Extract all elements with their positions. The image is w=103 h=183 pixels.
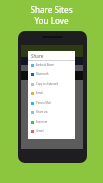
staticText: Android Beam: [36, 63, 55, 67]
staticText: Share via: [36, 110, 48, 114]
staticText: Evernote: [36, 120, 48, 124]
button[interactable]: Email: [28, 88, 75, 98]
staticText: Email: [36, 91, 43, 95]
button[interactable]: Gmail: [28, 126, 75, 136]
button[interactable]: Share via: [28, 107, 75, 117]
staticText: Picture Mail: [36, 101, 51, 105]
staticText: Gmail: [36, 129, 44, 133]
staticText: Share Sites: [30, 4, 73, 15]
staticText: Copy to clipboard: [36, 82, 59, 86]
staticText: You Love: [34, 15, 69, 26]
button[interactable]: Copy to clipboard: [28, 79, 75, 89]
button[interactable]: Evernote: [28, 117, 75, 127]
button[interactable]: Android Beam: [28, 60, 75, 70]
button[interactable]: Picture Mail: [28, 98, 75, 108]
staticText: Share: [31, 53, 44, 59]
staticText: Bluetooth: [36, 72, 49, 76]
button[interactable]: Bluetooth: [28, 69, 75, 79]
